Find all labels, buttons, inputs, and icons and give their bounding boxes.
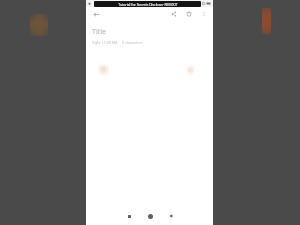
- staticText: Tutorial for Secrets Discloser REBOOT: [118, 2, 178, 7]
- button[interactable]: Share: [168, 8, 180, 20]
- staticText: 0 characters: [122, 40, 143, 45]
- staticText: Eight 11:00 AM: [92, 40, 118, 45]
- staticText: Title: [92, 27, 106, 37]
- button[interactable]: Recents: [122, 209, 136, 223]
- button[interactable]: Delete: [183, 8, 195, 20]
- button[interactable]: Home: [143, 209, 157, 223]
- button[interactable]: More options: [198, 8, 210, 20]
- button[interactable]: Back: [90, 8, 102, 20]
- button[interactable]: Back: [164, 209, 178, 223]
- button[interactable]: Tutorial for Secrets Discloser REBOOT: [94, 1, 201, 7]
